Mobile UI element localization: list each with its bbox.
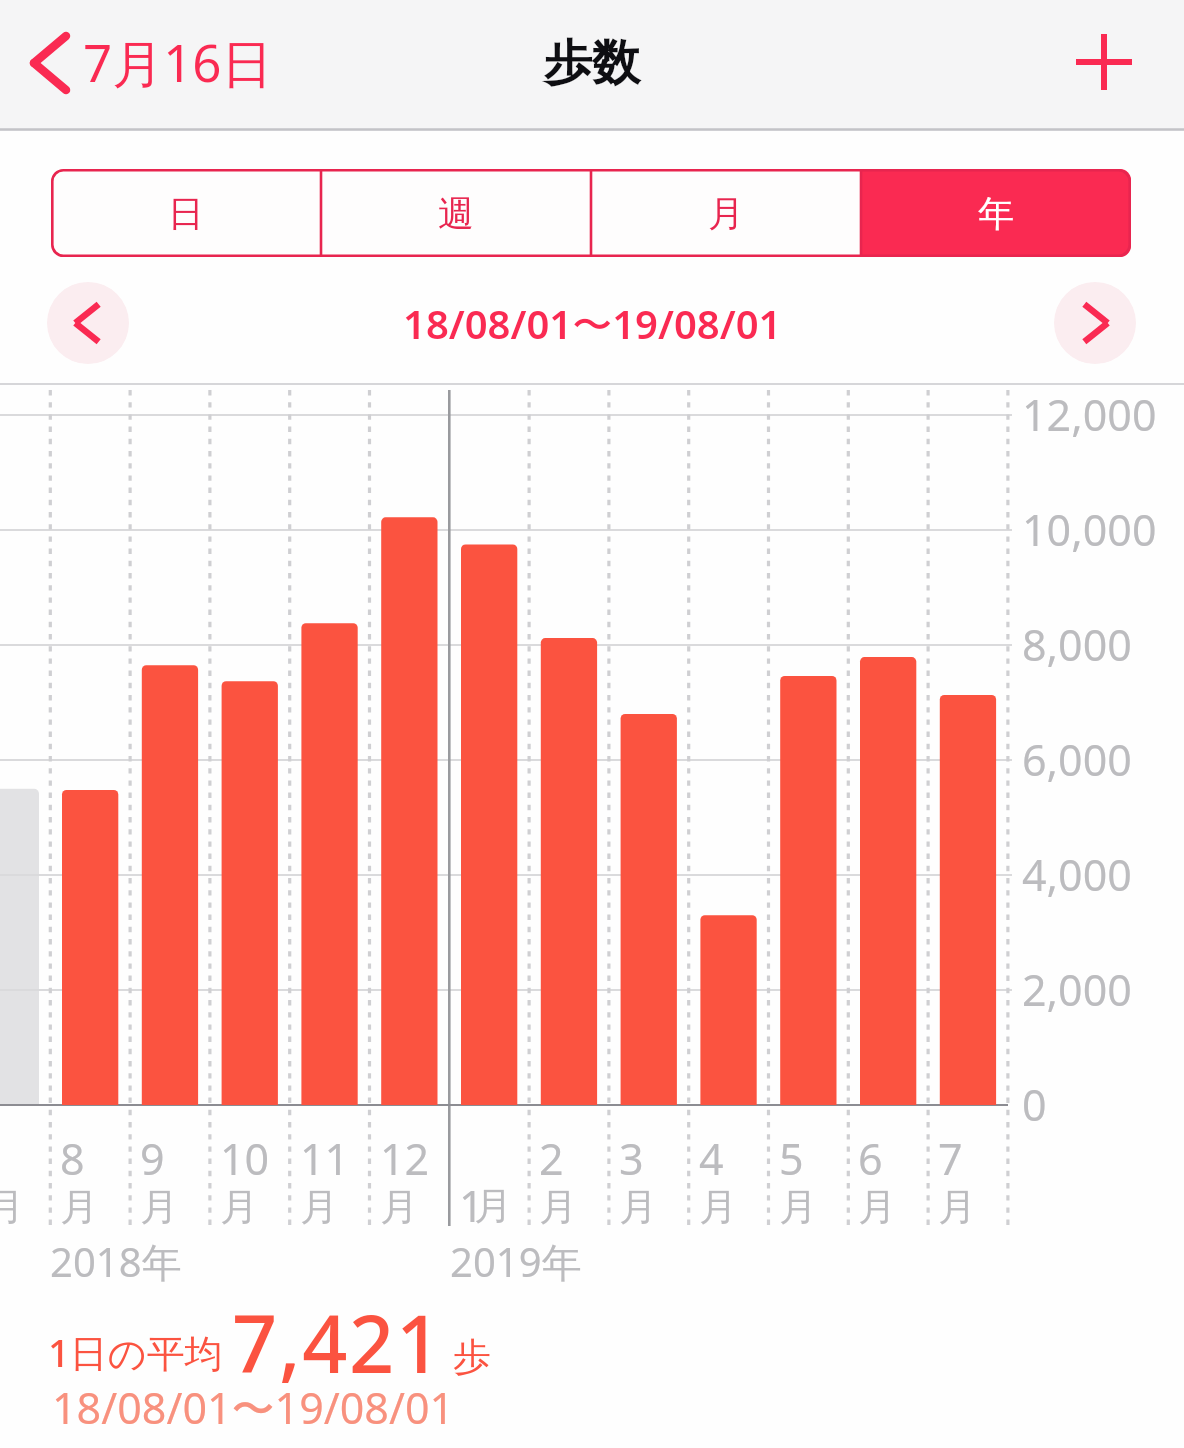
staticText: 8 — [60, 1129, 85, 1188]
staticText: 週 — [438, 191, 474, 236]
staticText: 月 — [380, 1183, 418, 1231]
staticText: 月 — [474, 1182, 512, 1230]
staticText: 歩 — [453, 1333, 491, 1381]
button[interactable]: 週 — [321, 169, 591, 257]
staticText: 2,000 — [1022, 960, 1132, 1019]
staticText: 歩数 — [544, 33, 640, 93]
staticText: 月 — [300, 1183, 338, 1231]
staticText: 日 — [168, 191, 204, 236]
staticText: 月 — [539, 1183, 577, 1231]
staticText: 10,000 — [1022, 500, 1157, 559]
staticText: 2 — [539, 1129, 564, 1188]
staticText: 9 — [140, 1129, 165, 1188]
staticText: 6 — [858, 1129, 883, 1188]
staticText: 12,000 — [1022, 385, 1157, 444]
staticText: 6,000 — [1022, 730, 1132, 789]
staticText: 10 — [220, 1129, 270, 1188]
staticText: 7,421 — [232, 1289, 443, 1397]
staticText: 18/08/01〜19/08/01 — [52, 1378, 455, 1437]
staticText: 7月16日 — [83, 27, 273, 97]
button[interactable]: 日 — [51, 169, 321, 257]
staticText: 月 — [708, 191, 744, 236]
staticText: 月 — [858, 1183, 896, 1231]
staticText: 7 — [938, 1129, 963, 1188]
staticText: 2018年 — [50, 1234, 182, 1289]
staticText: 月 — [619, 1183, 657, 1231]
button[interactable]: Back, 7月16日 — [28, 11, 273, 121]
staticText: 月 — [220, 1183, 258, 1231]
staticText: 月 — [779, 1183, 817, 1231]
button[interactable]: 年 — [861, 169, 1131, 257]
button[interactable]: Previous period — [47, 282, 129, 364]
button[interactable]: Add — [1062, 24, 1146, 108]
staticText: 2019年 — [450, 1234, 582, 1289]
staticText: 1 — [459, 1176, 484, 1235]
staticText: 月 — [140, 1183, 178, 1231]
staticText: 月 — [699, 1183, 737, 1231]
staticText: 1日の平均 — [48, 1326, 223, 1378]
staticText: 0 — [1022, 1075, 1047, 1134]
staticText: 4,000 — [1022, 845, 1132, 904]
staticText: 月 — [0, 1183, 24, 1231]
staticText: 18/08/01〜19/08/01 — [403, 296, 782, 351]
staticText: 月 — [60, 1183, 98, 1231]
staticText: 11 — [300, 1129, 350, 1188]
staticText: 4 — [699, 1129, 724, 1188]
staticText: 5 — [779, 1129, 804, 1188]
staticText: 12 — [380, 1129, 430, 1188]
staticText: 年 — [978, 191, 1014, 236]
staticText: 3 — [619, 1129, 644, 1188]
staticText: 月 — [938, 1183, 976, 1231]
button[interactable]: Next period — [1054, 282, 1136, 364]
button[interactable]: 月 — [591, 169, 861, 257]
staticText: 8,000 — [1022, 615, 1132, 674]
